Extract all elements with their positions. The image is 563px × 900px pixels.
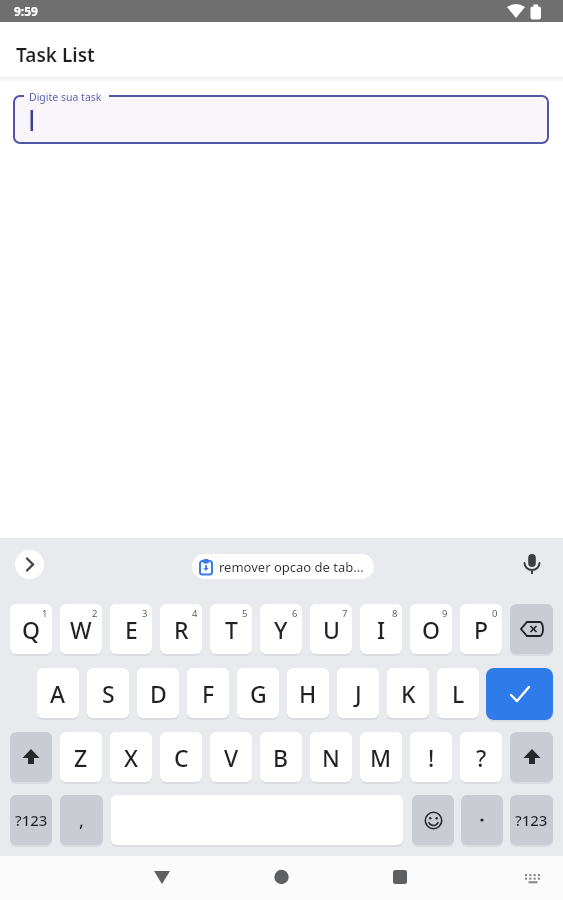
staticText: 4 — [192, 607, 198, 620]
staticText: N — [322, 742, 340, 773]
staticText: 2 — [92, 607, 98, 620]
staticText: C — [174, 742, 189, 773]
button[interactable]: B — [260, 732, 302, 782]
staticText: P — [474, 614, 489, 645]
staticText: 3 — [142, 607, 148, 620]
button[interactable]: W — [60, 604, 102, 654]
button[interactable]: D — [137, 668, 179, 718]
staticText: 0 — [492, 607, 498, 620]
staticText: ? — [476, 742, 487, 773]
staticText: X — [124, 742, 139, 773]
staticText: ! — [428, 742, 435, 773]
button[interactable]: ? — [460, 732, 502, 782]
staticText: A — [50, 678, 66, 709]
button[interactable]: Z — [60, 732, 102, 782]
button[interactable] — [14, 96, 548, 143]
staticText: B — [273, 742, 289, 773]
staticText: Task List — [16, 42, 95, 68]
button[interactable]: J — [337, 668, 379, 718]
staticText: ?123 — [15, 810, 48, 830]
button[interactable]: ?123 — [10, 795, 52, 845]
button[interactable]: E — [110, 604, 152, 654]
staticText: F — [202, 678, 215, 709]
button[interactable] — [510, 604, 553, 654]
staticText: S — [102, 678, 115, 709]
button[interactable] — [486, 668, 553, 720]
button[interactable] — [510, 732, 553, 782]
staticText: W — [70, 614, 92, 645]
staticText: 1 — [42, 607, 48, 620]
button[interactable]: M — [360, 732, 402, 782]
button[interactable] — [368, 858, 432, 898]
staticText: O — [422, 614, 441, 645]
staticText: I — [377, 614, 386, 645]
staticText: 6 — [292, 607, 298, 620]
staticText: 7 — [342, 607, 348, 620]
button[interactable] — [15, 550, 44, 579]
staticText: U — [323, 614, 340, 645]
button[interactable] — [10, 732, 52, 782]
button[interactable]: , — [60, 795, 103, 845]
staticText: T — [225, 614, 238, 645]
staticText: , — [79, 808, 84, 833]
button[interactable]: F — [187, 668, 229, 718]
staticText: L — [452, 678, 465, 709]
staticText: V — [224, 742, 239, 773]
button[interactable] — [461, 795, 503, 845]
button[interactable]: K — [387, 668, 429, 718]
button[interactable]: S — [87, 668, 129, 718]
button[interactable]: Q — [10, 604, 52, 654]
button[interactable]: X — [110, 732, 152, 782]
staticText: J — [355, 678, 362, 709]
staticText: remover opcao de tab... — [219, 558, 364, 576]
button[interactable] — [249, 858, 313, 898]
staticText: H — [299, 678, 317, 709]
button[interactable]: Y — [260, 604, 302, 654]
button[interactable]: C — [160, 732, 202, 782]
button[interactable]: T — [210, 604, 252, 654]
button[interactable]: ! — [410, 732, 452, 782]
staticText: Q — [22, 614, 41, 645]
staticText: Digite sua task — [29, 90, 102, 104]
staticText: 5 — [242, 607, 248, 620]
button[interactable] — [130, 858, 194, 898]
staticText: ?123 — [515, 810, 548, 830]
button[interactable]: O — [410, 604, 452, 654]
button[interactable] — [412, 795, 454, 845]
staticText: K — [401, 678, 416, 709]
button[interactable]: R — [160, 604, 202, 654]
button[interactable] — [512, 858, 552, 898]
button[interactable]: G — [237, 668, 279, 718]
staticText: Z — [74, 742, 88, 773]
staticText: 8 — [392, 607, 398, 620]
staticText: Y — [274, 614, 288, 645]
staticText: G — [250, 678, 267, 709]
staticText: 9:59 — [14, 3, 38, 19]
button[interactable]: U — [310, 604, 352, 654]
button[interactable]: L — [437, 668, 479, 718]
button[interactable]: P — [460, 604, 502, 654]
staticText: R — [174, 614, 189, 645]
button[interactable]: ?123 — [510, 795, 553, 845]
button[interactable]: I — [360, 604, 402, 654]
staticText: D — [150, 678, 167, 709]
button[interactable]: remover opcao de tab... — [192, 554, 374, 579]
button[interactable]: H — [287, 668, 329, 718]
staticText: E — [125, 614, 138, 645]
button[interactable] — [518, 550, 546, 579]
button[interactable]: A — [37, 668, 79, 718]
staticText: M — [370, 742, 392, 773]
button[interactable]: N — [310, 732, 352, 782]
button[interactable]: V — [210, 732, 252, 782]
staticText: 9 — [442, 607, 448, 620]
